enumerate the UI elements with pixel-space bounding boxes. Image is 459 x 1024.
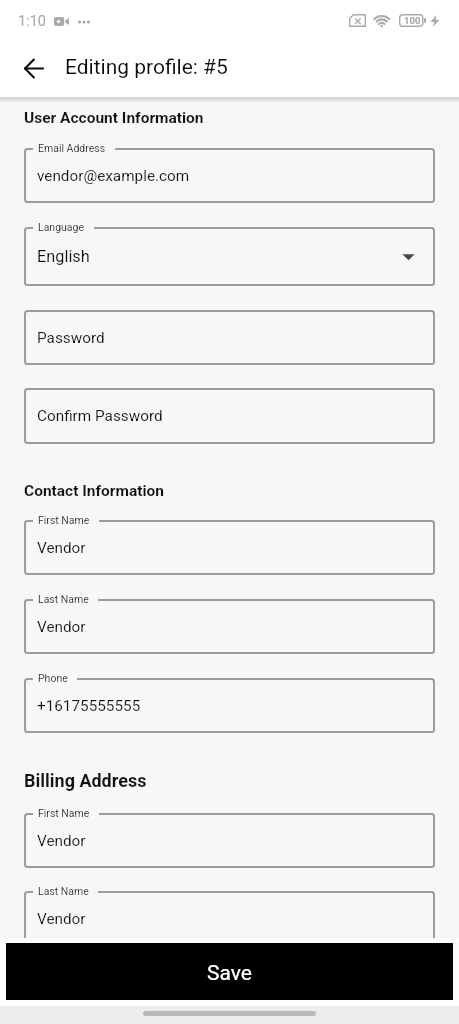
button[interactable]: Back (13, 48, 53, 88)
staticText: Last Name (38, 885, 89, 897)
staticText: Vendor (37, 832, 86, 850)
button[interactable]: Confirm Password (24, 388, 435, 444)
button[interactable]: Vendor (24, 891, 435, 946)
staticText: Confirm Password (37, 407, 163, 425)
button[interactable]: Open language menu (402, 250, 415, 263)
button[interactable]: Password (24, 310, 435, 365)
staticText: Billing Address (24, 770, 147, 791)
button[interactable]: Vendor (24, 599, 435, 654)
button[interactable]: English (24, 227, 435, 286)
button[interactable]: Vendor (24, 813, 435, 868)
staticText: 1:10 (18, 13, 46, 30)
staticText: Language (38, 221, 85, 233)
staticText: Vendor (37, 910, 86, 928)
staticText: +16175555555 (37, 697, 141, 715)
staticText: Vendor (37, 539, 86, 557)
staticText: 100 (404, 15, 421, 26)
button[interactable]: Vendor (24, 520, 435, 575)
staticText: Contact Information (24, 482, 164, 500)
staticText: Last Name (38, 593, 89, 605)
staticText: Phone (38, 672, 68, 684)
staticText: Save (207, 961, 252, 986)
staticText: User Account Information (24, 109, 204, 127)
staticText: First Name (38, 514, 90, 526)
button[interactable]: +16175555555 (24, 678, 435, 733)
staticText: Email Address (38, 142, 106, 154)
staticText: First Name (38, 807, 90, 819)
staticText: Editing profile: #5 (65, 55, 228, 80)
staticText: Vendor (37, 618, 86, 636)
staticText: English (37, 247, 90, 266)
staticText: Password (37, 329, 105, 347)
button[interactable]: Save (6, 943, 453, 1000)
staticText: vendor@example.com (37, 167, 190, 185)
button[interactable]: vendor@example.com (24, 148, 435, 203)
